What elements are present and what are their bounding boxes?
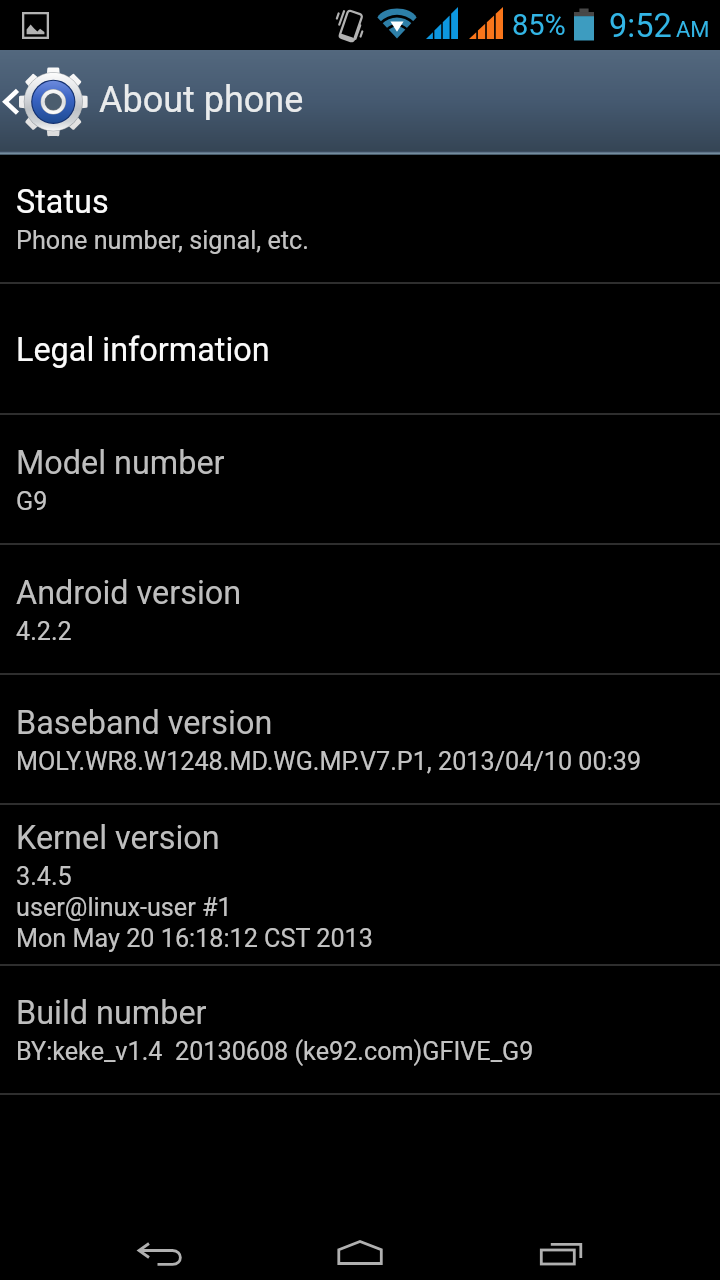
staticText: Phone number, signal, etc. [16,226,309,256]
staticText: AM [676,17,710,43]
staticText: Kernel version [16,819,220,857]
button[interactable]: Model number [0,415,720,545]
staticText: Build number [16,994,207,1032]
button[interactable]: Home [280,1136,440,1280]
staticText: Legal information [16,331,270,369]
button[interactable]: Build number [0,966,720,1095]
button[interactable]: Recent apps [480,1136,640,1280]
staticText: G9 [16,487,48,517]
staticText: MOLY.WR8.W1248.MD.WG.MP.V7.P1, 2013/04/1… [16,747,642,777]
staticText: 4.2.2 [16,617,72,647]
staticText: 3.4.5 user@linux-user #1 Mon May 20 16:1… [16,862,373,953]
staticText: Model number [16,444,225,482]
staticText: 85% [512,8,566,42]
button[interactable]: Status [0,155,720,284]
staticText: BY:keke_v1.4 20130608 (ke92.com)GFIVE_G9 [16,1037,534,1067]
button[interactable]: Back [80,1136,240,1280]
staticText: Android version [16,574,242,612]
button[interactable]: Legal information [0,284,720,415]
staticText: Status [16,183,109,221]
staticText: 9:52 [609,7,672,45]
button[interactable]: Android version [0,545,720,675]
staticText: Baseband version [16,704,273,742]
button[interactable]: Baseband version [0,675,720,805]
button[interactable]: About phone [0,50,720,155]
staticText: About phone [99,79,304,121]
button[interactable]: Kernel version [0,805,720,966]
